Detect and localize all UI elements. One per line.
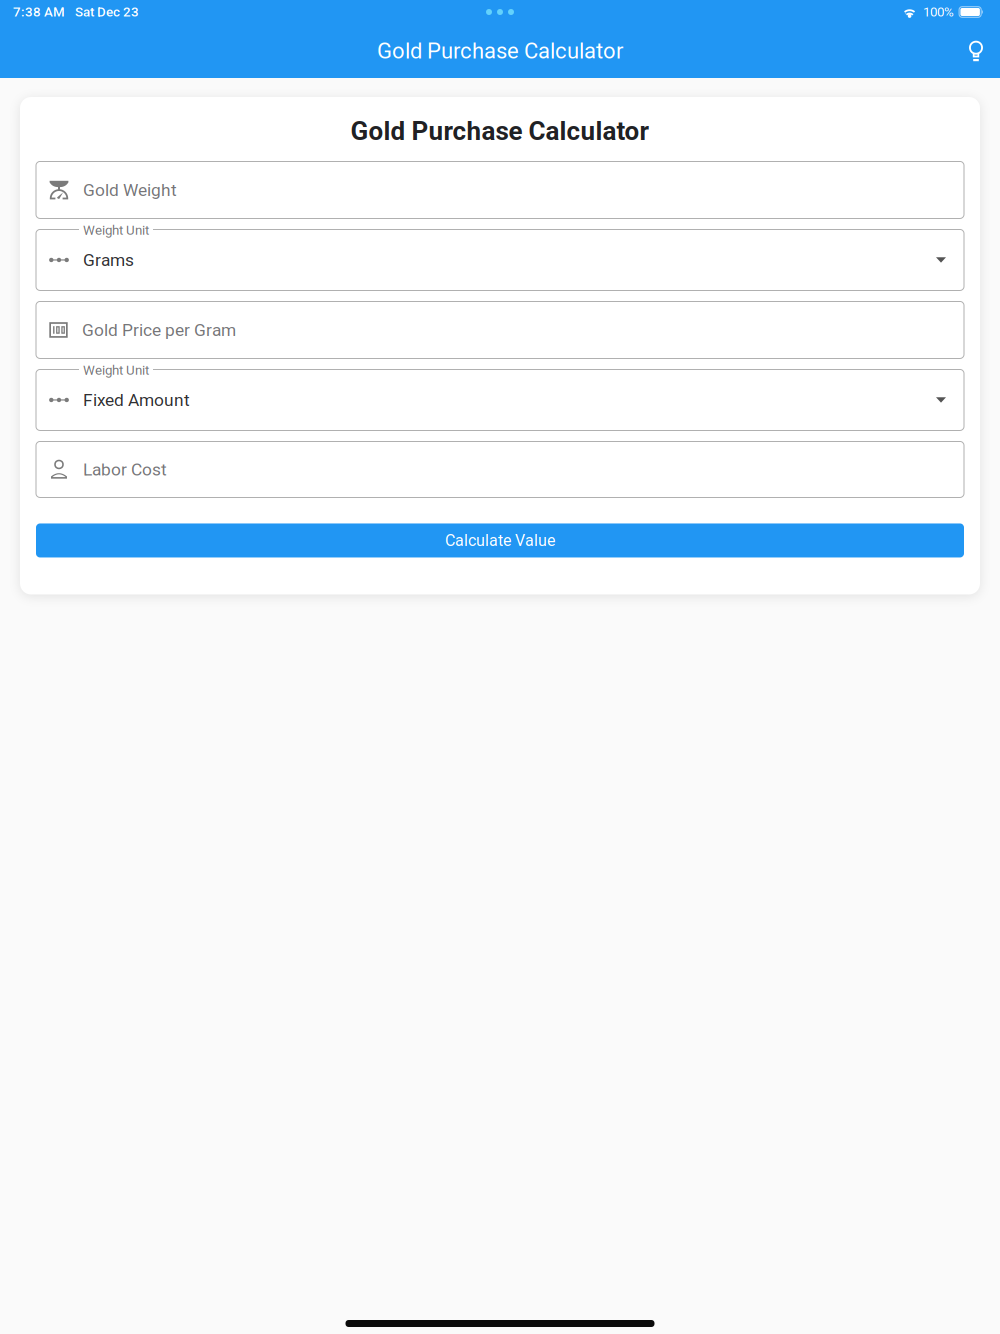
staticText: Gold Price per Gram (82, 320, 236, 340)
staticText: Calculate Value (445, 531, 555, 550)
staticText: Gold Weight (83, 180, 177, 200)
staticText: Sat Dec 23 (75, 4, 139, 20)
staticText: 100% (923, 4, 954, 20)
button[interactable]: Grams (36, 229, 964, 290)
staticText: 7:38 AM (13, 4, 65, 20)
staticText: Weight Unit (83, 362, 149, 378)
button[interactable]: Gold Price per Gram (36, 301, 964, 358)
staticText: Labor Cost (83, 459, 167, 480)
staticText: Weight Unit (83, 222, 149, 238)
button[interactable]: Labor Cost (36, 441, 964, 497)
staticText: Gold Purchase Calculator (350, 116, 649, 146)
button[interactable]: Gold Weight (36, 161, 964, 218)
button[interactable]: Tips (954, 29, 998, 73)
staticText: Fixed Amount (83, 390, 190, 410)
staticText: Grams (83, 250, 134, 270)
button[interactable]: Calculate Value (36, 523, 964, 557)
button[interactable]: Fixed Amount (36, 369, 964, 430)
staticText: Gold Purchase Calculator (377, 38, 623, 64)
